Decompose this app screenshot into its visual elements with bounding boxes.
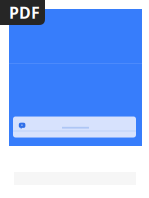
button[interactable]: Ask about this document <box>13 116 136 137</box>
staticText: PDF <box>9 2 40 23</box>
button[interactable]: PDF <box>0 0 45 25</box>
